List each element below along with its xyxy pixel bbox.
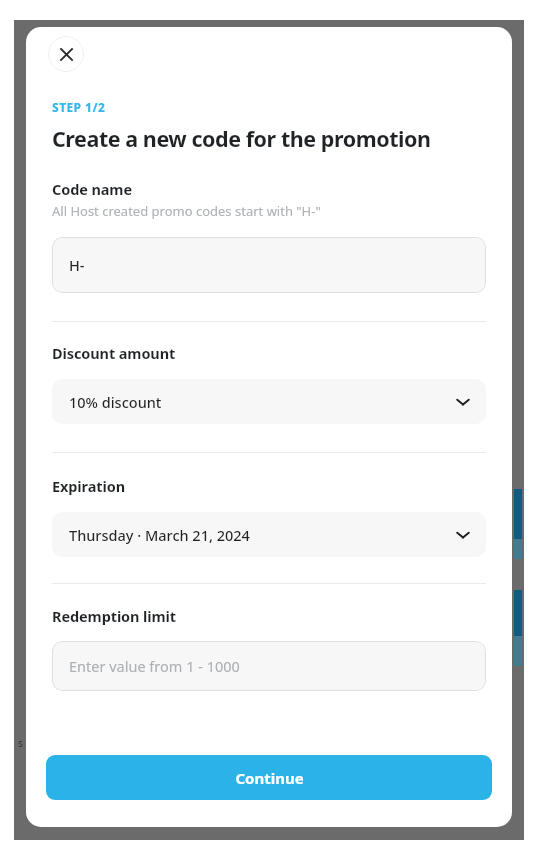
staticText: Redemption limit xyxy=(52,606,176,626)
button[interactable]: Thursday · March 21, 2024 xyxy=(52,512,486,557)
staticText: All Host created promo codes start with … xyxy=(52,202,321,220)
button[interactable]: 10% discount xyxy=(52,379,486,424)
button[interactable]: H- xyxy=(52,237,486,293)
button[interactable]: Continue xyxy=(46,755,492,800)
staticText: Continue xyxy=(235,768,304,788)
button[interactable]: Close xyxy=(48,36,84,72)
staticText: 10% discount xyxy=(69,392,455,412)
staticText: Expiration xyxy=(52,476,125,496)
staticText: H- xyxy=(69,255,85,275)
staticText: STEP 1/2 xyxy=(52,99,106,115)
staticText: s xyxy=(18,736,23,747)
staticText: Thursday · March 21, 2024 xyxy=(69,525,455,545)
staticText: Create a new code for the promotion xyxy=(52,124,431,153)
button[interactable]: Enter value from 1 - 1000 xyxy=(52,641,486,691)
staticText: Discount amount xyxy=(52,343,176,363)
staticText: Enter value from 1 - 1000 xyxy=(69,656,240,676)
staticText: Code name xyxy=(52,179,132,199)
